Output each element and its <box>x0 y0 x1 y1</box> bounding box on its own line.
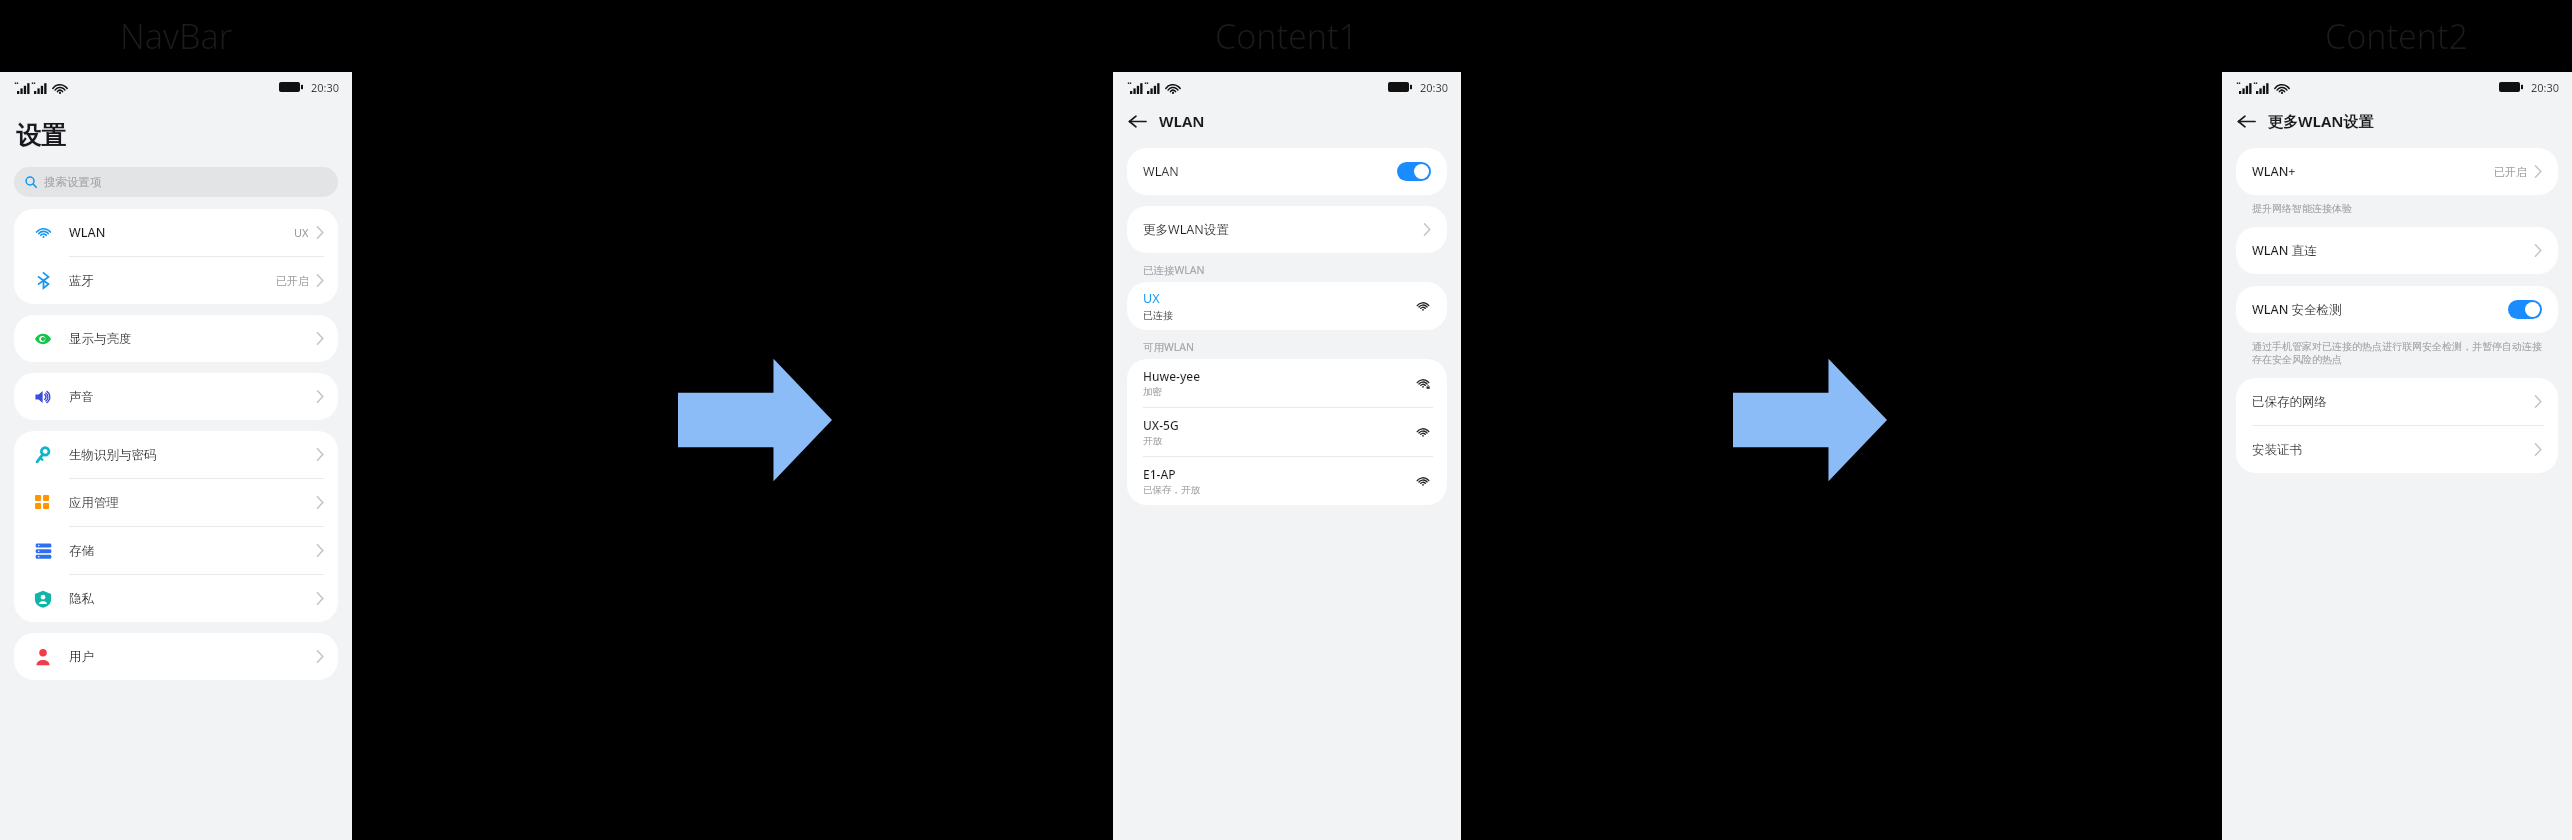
staticText: 生物识别与密码 <box>69 447 157 463</box>
staticText: 用户 <box>69 649 94 665</box>
staticText: 更多WLAN设置 <box>2268 111 2374 131</box>
button[interactable]: 应用管理 <box>14 479 338 526</box>
staticText: 蓝牙 <box>69 273 94 289</box>
staticText: 开放 <box>1143 435 1162 447</box>
staticText: 已保存，开放 <box>1143 484 1200 496</box>
other: Back <box>2237 112 2256 131</box>
staticText: 已开启 <box>276 274 309 288</box>
button[interactable]: UX-5G <box>1127 408 1447 456</box>
staticText: 20:30 <box>1420 80 1449 95</box>
button[interactable]: 搜索设置项 <box>14 167 338 197</box>
button[interactable]: 显示与亮度 <box>14 315 338 362</box>
staticText: WLAN <box>1159 111 1205 131</box>
button[interactable]: 蓝牙 <box>14 257 338 304</box>
staticText: 已连接 <box>1143 309 1173 322</box>
staticText: WLAN <box>69 224 106 241</box>
staticText: E1-AP <box>1143 466 1176 482</box>
button[interactable] <box>1397 162 1431 181</box>
staticText: UX <box>1143 290 1160 307</box>
staticText: WLAN+ <box>2252 163 2296 180</box>
staticText: 可用WLAN <box>1143 340 1194 354</box>
staticText: 应用管理 <box>69 495 119 511</box>
button[interactable]: 存储 <box>14 527 338 574</box>
button[interactable]: Back <box>1128 112 1147 131</box>
staticText: NavBar <box>120 13 233 59</box>
staticText: 通过手机管家对已连接的热点进行联网安全检测，并暂停自动连接存在安全风险的热点 <box>2252 340 2542 366</box>
staticText: UX-5G <box>1143 417 1179 433</box>
button[interactable]: 用户 <box>14 633 338 680</box>
staticText: Content2 <box>2325 13 2469 59</box>
other: Back <box>1128 112 1147 131</box>
staticText: UX <box>294 225 309 240</box>
staticText: WLAN 直连 <box>2252 242 2317 259</box>
staticText: 更多WLAN设置 <box>1143 221 1229 238</box>
staticText: 声音 <box>69 389 94 405</box>
button[interactable]: 声音 <box>14 373 338 420</box>
button[interactable]: WLAN 安全检测 <box>2236 286 2558 333</box>
button[interactable]: 更多WLAN设置 <box>1127 206 1447 253</box>
button[interactable]: 隐私 <box>14 575 338 622</box>
staticText: 设置 <box>16 120 66 151</box>
staticText: 显示与亮度 <box>69 331 132 347</box>
staticText: 20:30 <box>311 80 340 95</box>
button[interactable]: WLAN+ <box>2236 148 2558 195</box>
button[interactable]: WLAN <box>1127 148 1447 195</box>
staticText: 隐私 <box>69 591 94 607</box>
button[interactable]: UX <box>1127 282 1447 330</box>
staticText: 存储 <box>69 543 94 559</box>
staticText: WLAN <box>1143 163 1179 180</box>
staticText: 已开启 <box>2494 165 2527 179</box>
staticText: 提升网络智能连接体验 <box>2252 202 2352 215</box>
button[interactable]: 已保存的网络 <box>2236 378 2558 425</box>
button[interactable]: Huwe-yee <box>1127 359 1447 407</box>
staticText: 20:30 <box>2531 80 2560 95</box>
button[interactable]: WLAN <box>14 209 338 256</box>
button[interactable]: E1-AP <box>1127 457 1447 505</box>
button[interactable]: Back <box>2237 112 2256 131</box>
staticText: Content1 <box>1215 13 1359 59</box>
button[interactable] <box>2508 300 2542 319</box>
staticText: Huwe-yee <box>1143 368 1201 384</box>
button[interactable]: 生物识别与密码 <box>14 431 338 478</box>
staticText: 安装证书 <box>2252 442 2302 458</box>
button[interactable]: 安装证书 <box>2236 426 2558 473</box>
staticText: 已保存的网络 <box>2252 394 2327 410</box>
staticText: 搜索设置项 <box>44 175 102 189</box>
staticText: WLAN 安全检测 <box>2252 301 2342 318</box>
staticText: 加密 <box>1143 386 1162 398</box>
button[interactable]: WLAN 直连 <box>2236 227 2558 274</box>
staticText: 已连接WLAN <box>1143 263 1205 277</box>
